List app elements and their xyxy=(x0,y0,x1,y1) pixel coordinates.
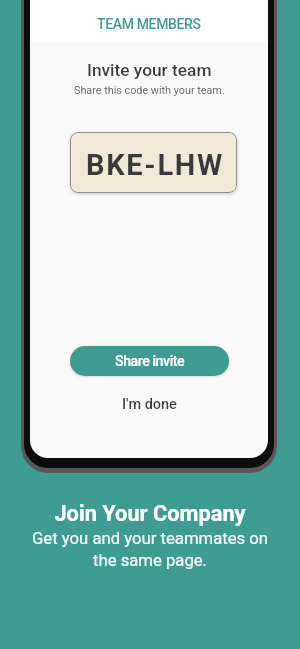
staticText: BKE-LHW xyxy=(86,148,225,182)
staticText: Get you and your teammates on the same p… xyxy=(25,529,275,570)
button[interactable]: TEAM MEMBERS xyxy=(30,0,268,42)
staticText: Share invite xyxy=(115,353,185,370)
staticText: Join Your Company xyxy=(54,501,246,527)
button[interactable]: I'm done xyxy=(110,390,189,419)
button[interactable]: BKE-LHW xyxy=(70,132,237,193)
staticText: Share this code with your team. xyxy=(74,84,225,97)
staticText: TEAM MEMBERS xyxy=(97,16,201,32)
staticText: Invite your team xyxy=(87,60,212,80)
staticText: I'm done xyxy=(122,396,177,413)
button[interactable]: Share invite xyxy=(70,346,229,376)
